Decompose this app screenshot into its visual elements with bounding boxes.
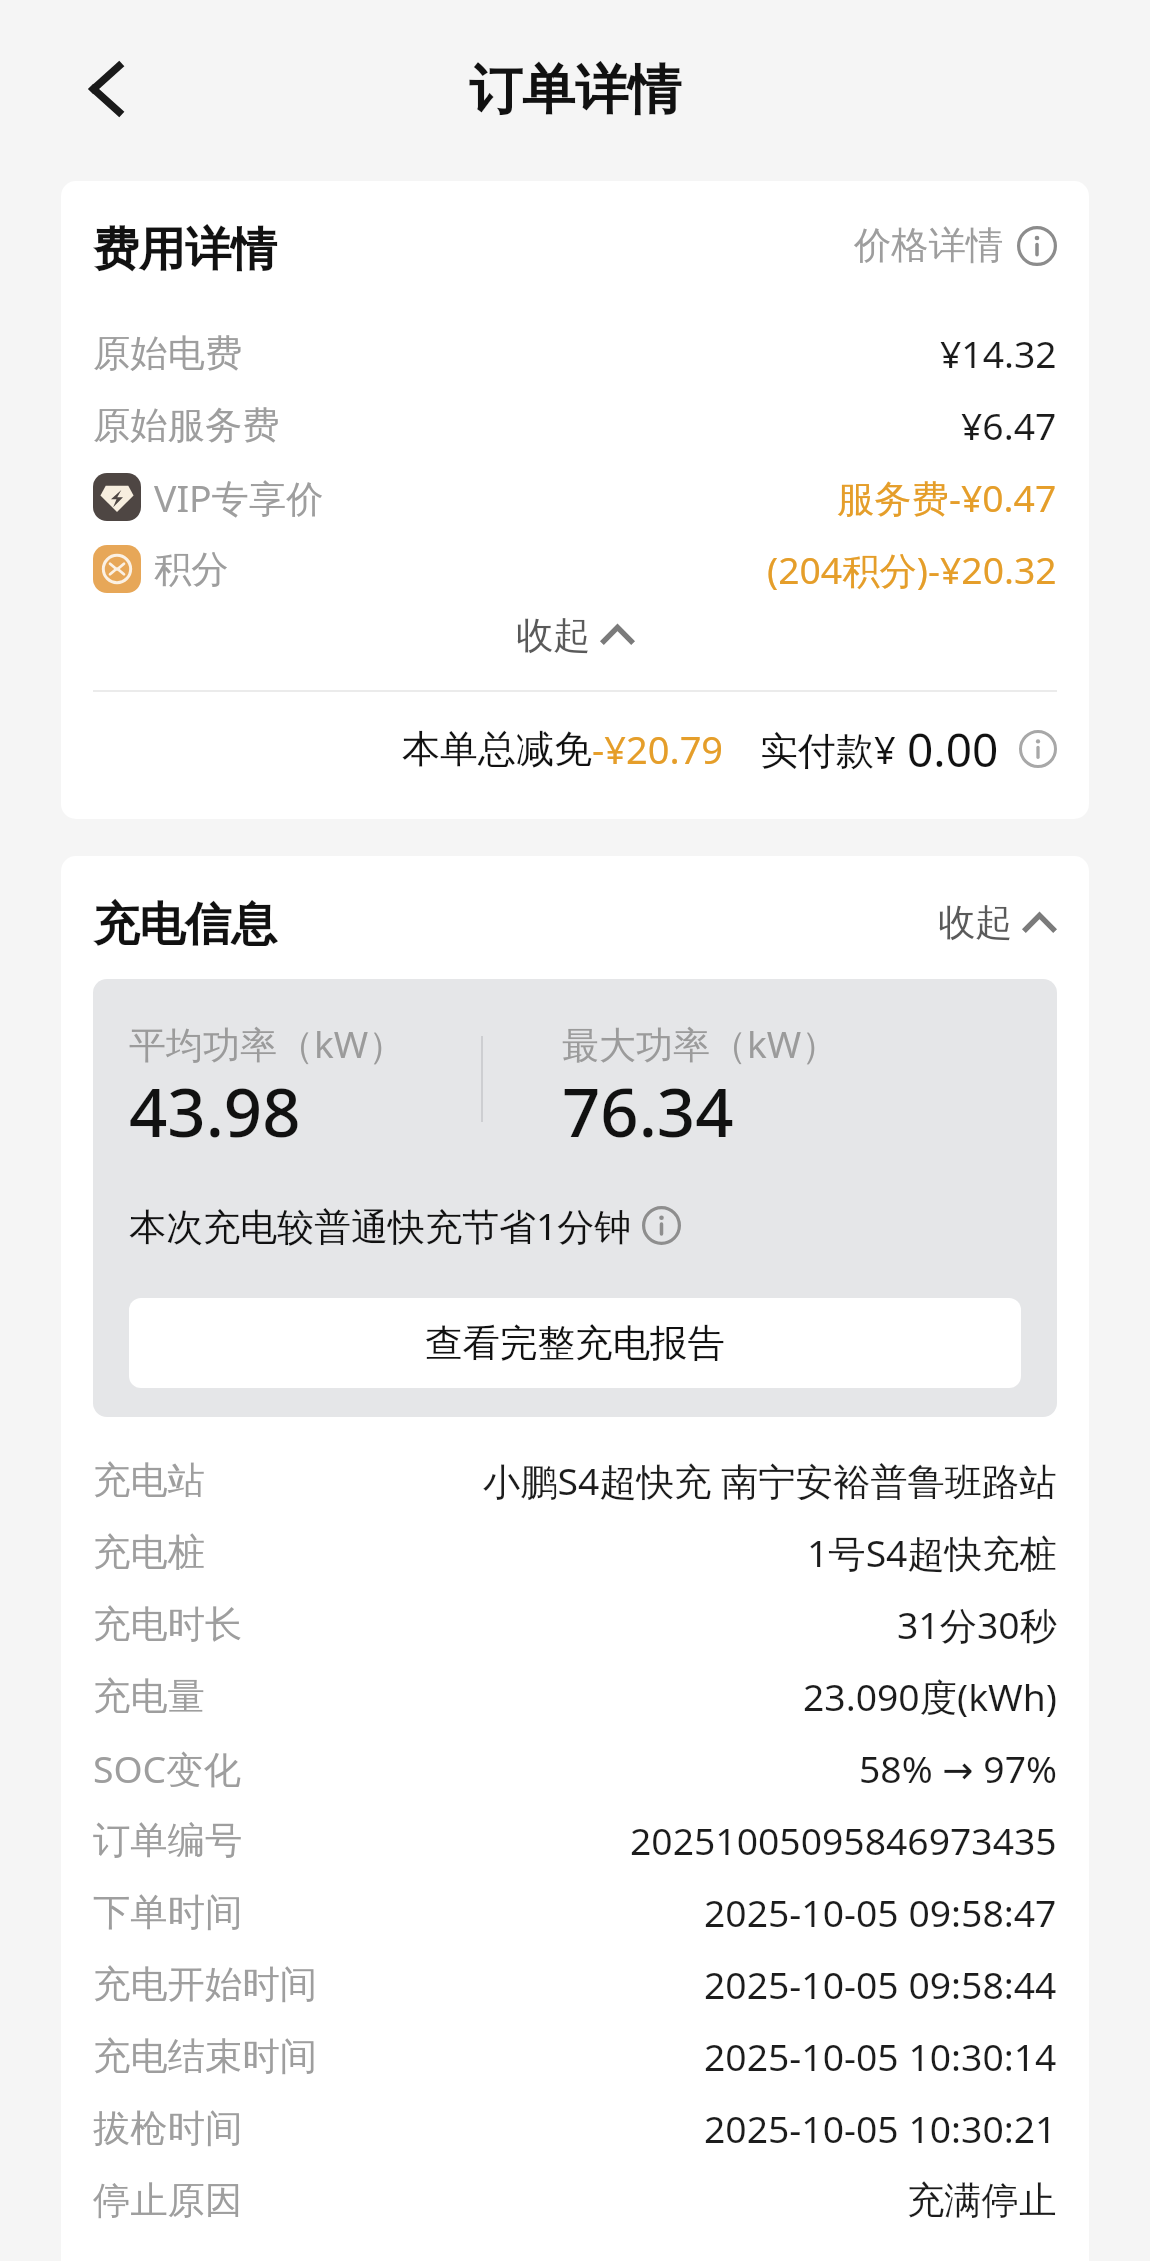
staticText: 本次充电较普通快充节省1分钟: [129, 1200, 632, 1251]
staticText: 2025-10-05 09:58:47: [704, 1887, 1057, 1938]
staticText: ¥6.47: [961, 400, 1057, 451]
staticText: 订单编号: [93, 1817, 243, 1864]
staticText: 价格详情: [854, 222, 1004, 269]
staticText: 本单总减免: [402, 725, 592, 773]
button[interactable]: 查看完整充电报告: [129, 1298, 1021, 1388]
staticText: SOC变化: [93, 1743, 241, 1794]
staticText: 订单详情: [469, 57, 681, 124]
staticText: 1号S4超快充桩: [807, 1527, 1057, 1578]
staticText: ¥14.32: [940, 328, 1057, 379]
staticText: 23.090度(kWh): [803, 1671, 1057, 1722]
staticText: 拔枪时间: [93, 2105, 243, 2152]
staticText: 平均功率（kW）: [129, 1018, 406, 1069]
button[interactable]: Back: [64, 45, 148, 129]
button[interactable]: Payment info: [1019, 730, 1057, 768]
staticText: 下单时间: [93, 1889, 243, 1936]
staticText: 充满停止: [907, 2177, 1057, 2224]
staticText: 实付款¥: [760, 723, 896, 775]
staticText: (204积分)-¥20.32: [767, 544, 1057, 595]
button[interactable]: 收起: [93, 605, 1057, 665]
staticText: 充电时长: [93, 1601, 243, 1648]
staticText: 服务费-¥0.47: [837, 472, 1057, 523]
staticText: 积分: [154, 546, 229, 593]
staticText: 2025-10-05 09:58:44: [704, 1959, 1057, 2010]
staticText: 充电结束时间: [93, 2033, 317, 2080]
staticText: 76.34: [562, 1065, 734, 1156]
staticText: 收起: [516, 612, 591, 659]
staticText: 2025-10-05 10:30:21: [704, 2103, 1057, 2154]
staticText: -¥20.79: [592, 723, 724, 775]
staticText: 费用详情: [93, 221, 277, 279]
button[interactable]: 价格详情: [854, 222, 1057, 269]
staticText: 20251005095846973435: [630, 1815, 1057, 1866]
staticText: 充电量: [93, 1673, 205, 1720]
staticText: 充电开始时间: [93, 1961, 317, 2008]
staticText: 43.98: [129, 1065, 301, 1156]
staticText: 停止原因: [93, 2177, 243, 2224]
staticText: 充电信息: [93, 896, 277, 954]
staticText: 2025-10-05 10:30:14: [704, 2031, 1057, 2082]
staticText: 58% → 97%: [859, 1743, 1057, 1794]
staticText: 原始电费: [93, 330, 243, 377]
staticText: 充电站: [93, 1457, 205, 1504]
button[interactable]: Saved time info: [642, 1206, 681, 1245]
staticText: 原始服务费: [93, 402, 280, 449]
staticText: 0.00: [907, 718, 999, 781]
staticText: 查看完整充电报告: [425, 1320, 725, 1367]
staticText: 小鹏S4超快充 南宁安裕普鲁班路站: [483, 1455, 1057, 1506]
button[interactable]: 收起: [938, 899, 1057, 946]
staticText: 充电桩: [93, 1529, 205, 1576]
staticText: VIP专享价: [154, 472, 324, 523]
staticText: 收起: [938, 899, 1013, 946]
staticText: 最大功率（kW）: [562, 1018, 839, 1069]
staticText: 31分30秒: [897, 1599, 1057, 1650]
